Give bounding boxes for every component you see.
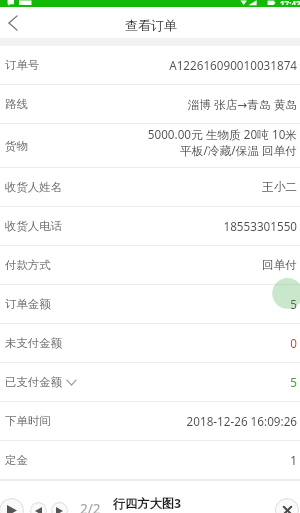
staticText: 定金	[5, 453, 28, 467]
button[interactable]: 已支付金额	[0, 363, 300, 402]
staticText: A122616090010031874	[169, 57, 297, 73]
button[interactable]: 收货人姓名	[0, 168, 300, 207]
staticText: 5	[290, 296, 297, 312]
staticText: 17:42	[280, 0, 300, 5]
staticText: 5000.00元 生物质 20吨 10米	[147, 126, 297, 142]
staticText: 回单付	[261, 258, 297, 273]
staticText: 已支付金额	[5, 375, 62, 389]
button[interactable]: Next	[51, 502, 68, 513]
staticText: 付款方式	[5, 258, 51, 272]
staticText: 收货人姓名	[5, 180, 62, 194]
staticText: 查看订单	[125, 17, 177, 33]
button[interactable]: Previous	[30, 502, 47, 513]
staticText: 2/2	[80, 500, 101, 513]
button[interactable]: 定金	[0, 441, 300, 480]
staticText: 行四方大图3	[113, 495, 181, 512]
staticText: 订单号	[5, 58, 40, 72]
staticText: 18553301550	[223, 218, 297, 234]
staticText: 1	[290, 452, 297, 468]
staticText: 未支付金额	[5, 336, 62, 350]
button[interactable]: 订单金额	[0, 285, 300, 324]
staticText: 5	[290, 374, 297, 390]
button[interactable]: Play	[0, 498, 24, 513]
staticText: 淄博 张店→青岛 黄岛	[187, 96, 297, 112]
button[interactable]: 付款方式	[0, 246, 300, 285]
staticText: 2018-12-26 16:09:26	[186, 413, 297, 429]
button[interactable]: 路线	[0, 85, 300, 124]
staticText: 收货人电话	[5, 219, 62, 233]
staticText: 路线	[5, 97, 28, 111]
button[interactable]: 收货人电话	[0, 207, 300, 246]
staticText: 下单时间	[5, 414, 51, 428]
button[interactable]: Close	[275, 498, 299, 513]
button[interactable]: 货物	[0, 124, 300, 168]
button[interactable]: 下单时间	[0, 402, 300, 441]
staticText: 货物	[5, 139, 28, 153]
staticText: 王小二	[261, 180, 297, 195]
button[interactable]: 未支付金额	[0, 324, 300, 363]
button[interactable]: Back	[0, 7, 26, 38]
staticText: 订单金额	[5, 297, 51, 311]
staticText: 平板/冷藏/保温 回单付	[180, 142, 297, 158]
staticText: 0	[290, 335, 297, 351]
button[interactable]: 订单号	[0, 46, 300, 85]
